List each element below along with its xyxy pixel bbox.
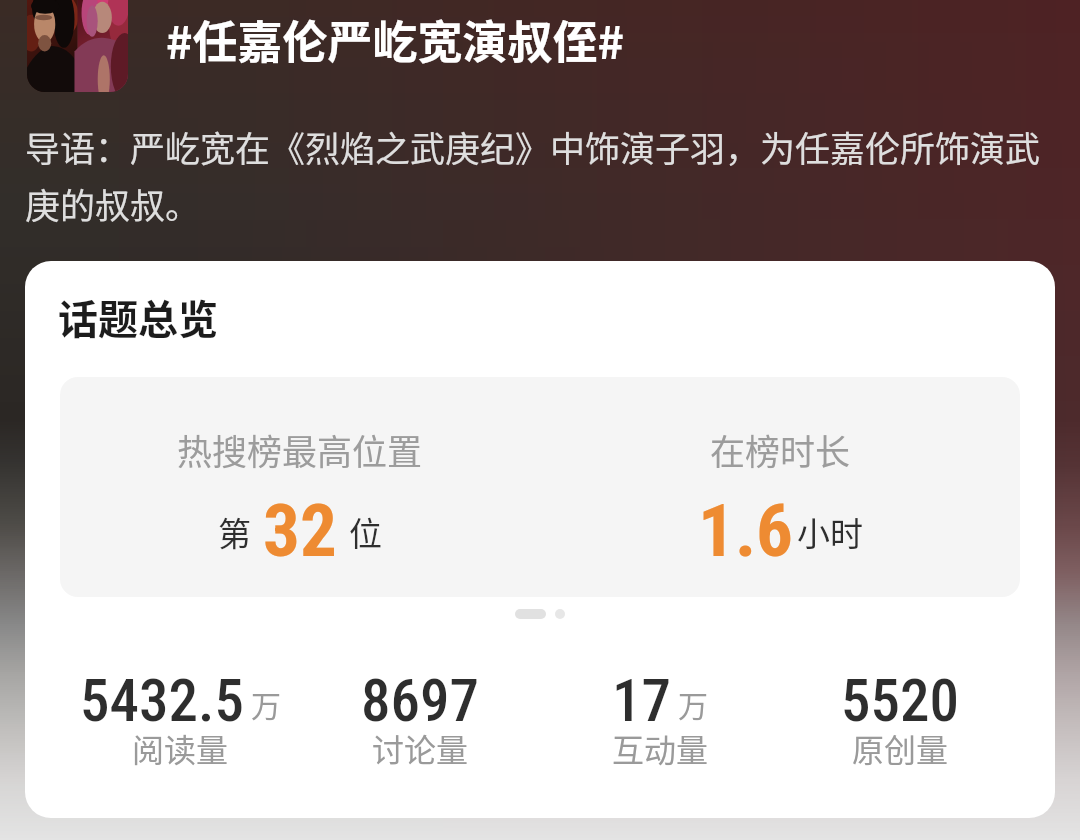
staticText: 小时 (797, 508, 863, 556)
staticText: 阅读量 (132, 725, 229, 771)
staticText: 5432.5 (80, 666, 244, 735)
staticText: 万 (251, 682, 281, 725)
staticText: 5520 (841, 666, 959, 735)
button[interactable]: Topic cover image (27, 0, 128, 92)
staticText: 8697 (361, 666, 479, 735)
button[interactable]: 5520 (780, 666, 1020, 786)
staticText: 位 (349, 508, 382, 556)
staticText: 32 (263, 488, 337, 574)
staticText: 1.6 (698, 488, 793, 574)
button[interactable]: #任嘉伦严屹宽演叔侄# (166, 7, 625, 72)
button[interactable]: 5432.5 (60, 666, 300, 786)
button[interactable]: 17 (540, 666, 780, 786)
button[interactable]: 在榜时长 (540, 377, 1020, 597)
staticText: 17 (612, 666, 671, 735)
staticText: 原创量 (852, 725, 949, 771)
button[interactable]: 热搜榜最高位置 (60, 377, 1020, 597)
staticText: 讨论量 (372, 725, 469, 771)
button[interactable]: 8697 (300, 666, 540, 786)
staticText: 第 (218, 508, 251, 556)
staticText: 话题总览 (58, 288, 218, 346)
button[interactable]: 热搜榜最高位置 (60, 377, 540, 597)
staticText: 万 (678, 682, 708, 725)
staticText: 在榜时长 (710, 424, 851, 475)
staticText: 热搜榜最高位置 (177, 424, 423, 475)
staticText: 互动量 (612, 725, 709, 771)
staticText: 导语：严屹宽在《烈焰之武庚纪》中饰演子羽，为任嘉伦所饰演武庚的叔叔。 (25, 121, 1046, 230)
